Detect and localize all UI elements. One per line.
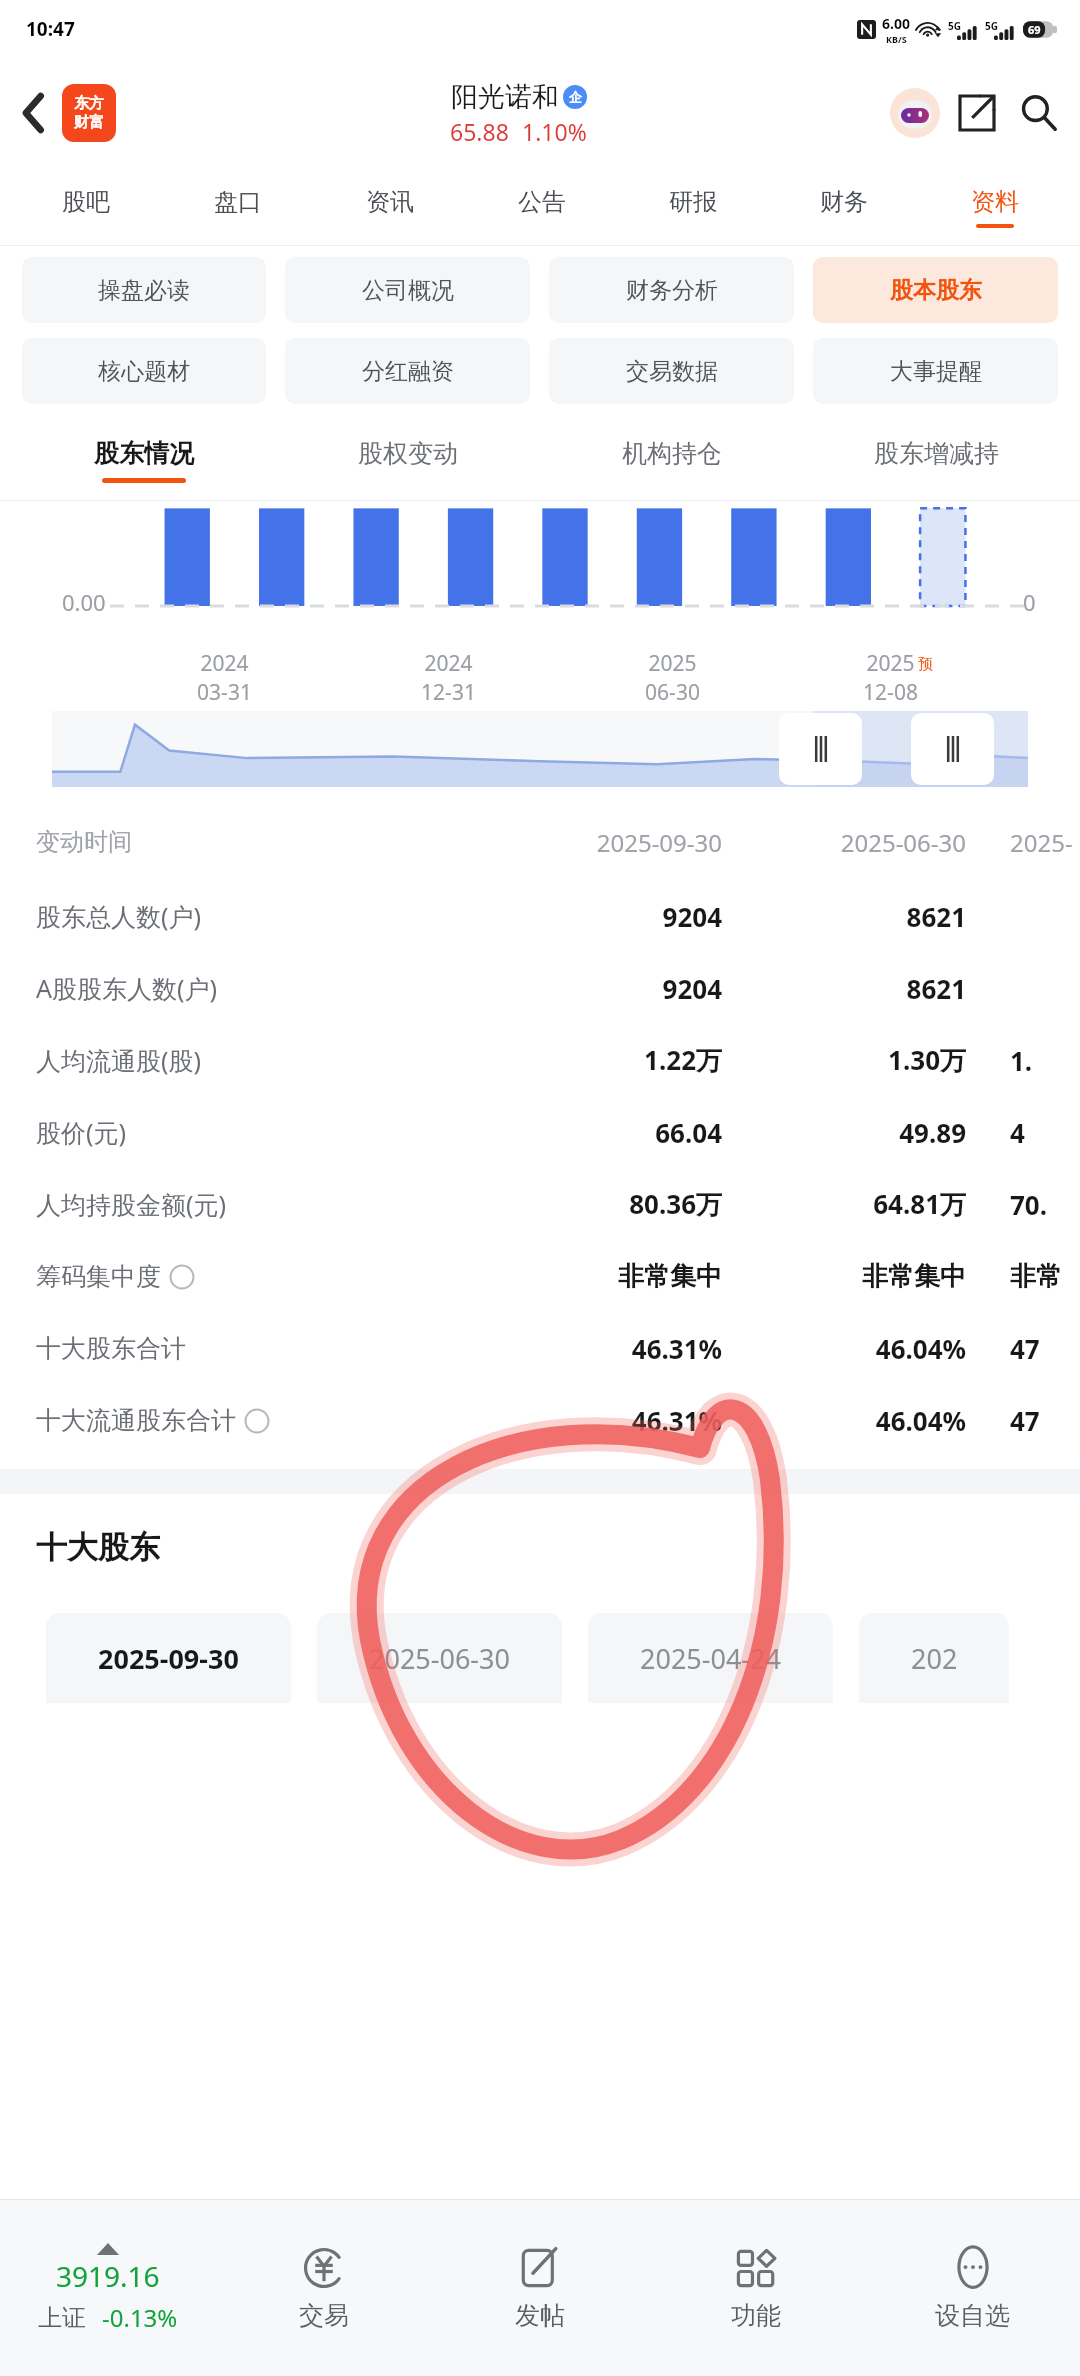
button[interactable]: 交易数据 (549, 338, 794, 404)
button[interactable]: 发帖 (432, 2200, 648, 2376)
staticText: 公告 (518, 187, 566, 217)
staticText: 2024 03-31 (197, 649, 252, 707)
staticText: 十大流通股东合计 (36, 1405, 236, 1436)
staticText: 股权变动 (358, 438, 458, 469)
staticText: 操盘必读 (98, 276, 190, 305)
staticText: 非常集中 (522, 1260, 722, 1293)
staticText: 公司概况 (362, 276, 454, 305)
staticText: 47 (1010, 1403, 1080, 1438)
button[interactable]: 机构持仓 (540, 419, 804, 501)
button[interactable]: 2025-04-24 (588, 1613, 833, 1703)
button[interactable]: 操盘必读 (22, 257, 266, 323)
button[interactable]: 十大股东合计 (0, 1312, 1080, 1384)
staticText: 2025-04-24 (640, 1640, 781, 1677)
staticText: 1.30万 (766, 1042, 966, 1078)
staticText: -0.13% (102, 2301, 178, 2334)
staticText: 8621 (766, 899, 966, 934)
staticText: 47 (1010, 1331, 1080, 1366)
staticText: 股吧 (62, 187, 110, 217)
staticText: 十大股东合计 (36, 1333, 186, 1364)
button[interactable]: 股吧 (10, 168, 162, 246)
staticText: 0 (1023, 587, 1036, 617)
staticText: 65.88 (450, 116, 509, 147)
staticText: 4 (1010, 1115, 1080, 1150)
button[interactable]: 大事提醒 (813, 338, 1058, 404)
staticText: 2025- (1010, 826, 1080, 859)
button[interactable]: 股东增减持 (804, 419, 1068, 501)
staticText: 核心题材 (98, 357, 190, 386)
staticText: 9204 (522, 971, 722, 1006)
staticText: 非常集中 (766, 1260, 966, 1293)
button[interactable]: 资讯 (314, 168, 466, 246)
button[interactable]: 2025-09-30 (46, 1613, 291, 1703)
button[interactable]: 功能 (648, 2200, 864, 2376)
button[interactable]: 人均持股金额(元) (0, 1168, 1080, 1240)
staticText: 5G (948, 19, 961, 33)
staticText: 49.89 (766, 1115, 966, 1150)
button[interactable]: 股东总人数(户) (0, 880, 1080, 952)
button[interactable]: 交易 (216, 2200, 432, 2376)
button[interactable]: A股股东人数(户) (0, 952, 1080, 1024)
staticText: 非常 (1010, 1260, 1080, 1293)
button[interactable]: 股东情况 (12, 419, 276, 501)
button[interactable]: 核心题材 (22, 338, 266, 404)
button[interactable]: 财务 (768, 168, 919, 246)
button[interactable]: 资料 (919, 168, 1070, 246)
button[interactable]: 分红融资 (285, 338, 530, 404)
button[interactable]: 公告 (466, 168, 617, 246)
staticText: 财务 (820, 187, 868, 217)
button[interactable]: Back (6, 85, 62, 141)
staticText: 3919.16 (56, 2257, 160, 2295)
button[interactable]: 人均流通股(股) (0, 1024, 1080, 1096)
staticText: 1.22万 (522, 1042, 722, 1078)
button[interactable]: Range handle (911, 713, 994, 785)
staticText: 202 (911, 1640, 958, 1677)
button[interactable]: East Money home (62, 84, 116, 142)
staticText: 人均流通股(股) (36, 1043, 202, 1077)
button[interactable]: 盘口 (162, 168, 314, 246)
staticText: 资料 (971, 187, 1019, 217)
staticText: 财务分析 (626, 276, 718, 305)
staticText: KB/S (886, 33, 907, 45)
staticText: 46.31% (522, 1331, 722, 1366)
button[interactable]: Range handle (779, 713, 862, 785)
button[interactable]: 股权变动 (276, 419, 540, 501)
button[interactable]: 筹码集中度 (0, 1240, 1080, 1312)
staticText: 筹码集中度 (36, 1261, 161, 1292)
staticText: 64.81万 (766, 1186, 966, 1222)
staticText: 大事提醒 (890, 357, 982, 386)
button[interactable]: 十大流通股东合计 (0, 1384, 1080, 1456)
button[interactable]: Share (946, 82, 1008, 144)
staticText: 2024 12-31 (421, 649, 476, 707)
staticText: 阳光诺和 (451, 80, 559, 114)
staticText: 股东情况 (94, 438, 194, 469)
button[interactable]: 研报 (617, 168, 768, 246)
button[interactable]: 公司概况 (285, 257, 530, 323)
button[interactable]: 2025-06-30 (317, 1613, 562, 1703)
staticText: 69 (1028, 22, 1041, 37)
staticText: 企 (569, 89, 582, 105)
staticText: 66.04 (522, 1115, 722, 1150)
staticText: 股东总人数(户) (36, 899, 202, 933)
button[interactable]: Search (1008, 82, 1070, 144)
staticText: 46.04% (766, 1403, 966, 1438)
button[interactable]: AI assistant (884, 82, 946, 144)
staticText: 46.31% (522, 1403, 722, 1438)
staticText: 股东增减持 (874, 438, 999, 469)
button[interactable]: 3919.16 (0, 2200, 216, 2376)
button[interactable]: 财务分析 (549, 257, 794, 323)
button[interactable]: 202 (859, 1613, 1009, 1703)
staticText: 十大股东 (36, 1528, 160, 1567)
staticText: 变动时间 (36, 827, 132, 857)
button[interactable]: 设自选 (864, 2200, 1080, 2376)
button[interactable]: 股本股东 (813, 257, 1058, 323)
staticText: 70. (1010, 1187, 1080, 1222)
staticText: 盘口 (214, 187, 262, 217)
staticText: 交易 (299, 2300, 349, 2331)
button[interactable]: 股价(元) (0, 1096, 1080, 1168)
staticText: 分红融资 (362, 357, 454, 386)
staticText: 股本股东 (890, 276, 982, 305)
staticText: A股股东人数(户) (36, 971, 217, 1005)
